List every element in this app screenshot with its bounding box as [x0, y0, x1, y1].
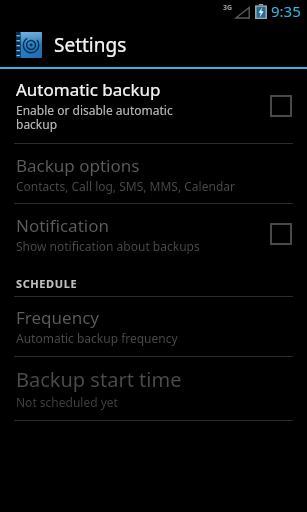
button[interactable]: Backup options [0, 144, 307, 203]
staticText: SCHEDULE [16, 276, 78, 291]
staticText: Frequency [16, 306, 99, 329]
button[interactable]: Settings [0, 22, 307, 67]
staticText: 9:35 [271, 1, 301, 21]
staticText: Notification [16, 214, 109, 237]
other: Battery charging [255, 4, 267, 19]
staticText: Not scheduled yet [16, 394, 118, 410]
staticText: Enable or disable automatic backup [16, 102, 173, 133]
staticText: Automatic backup [16, 78, 161, 101]
staticText: Contacts, Call log, SMS, MMS, Calendar [16, 178, 235, 194]
staticText: Backup options [16, 154, 140, 177]
button[interactable]: Notification [0, 204, 307, 263]
staticText: Automatic backup frequency [16, 330, 178, 346]
button[interactable]: Toggle checkbox [271, 224, 291, 244]
button[interactable]: Frequency [0, 297, 307, 356]
staticText: Settings [54, 32, 127, 58]
staticText: 3G [223, 3, 233, 13]
button[interactable]: Backup start time [0, 357, 307, 420]
button[interactable]: Toggle checkbox [271, 96, 291, 116]
staticText: Backup start time [16, 366, 182, 393]
button[interactable]: Automatic backup [0, 77, 307, 143]
staticText: Show notification about backups [16, 238, 200, 254]
